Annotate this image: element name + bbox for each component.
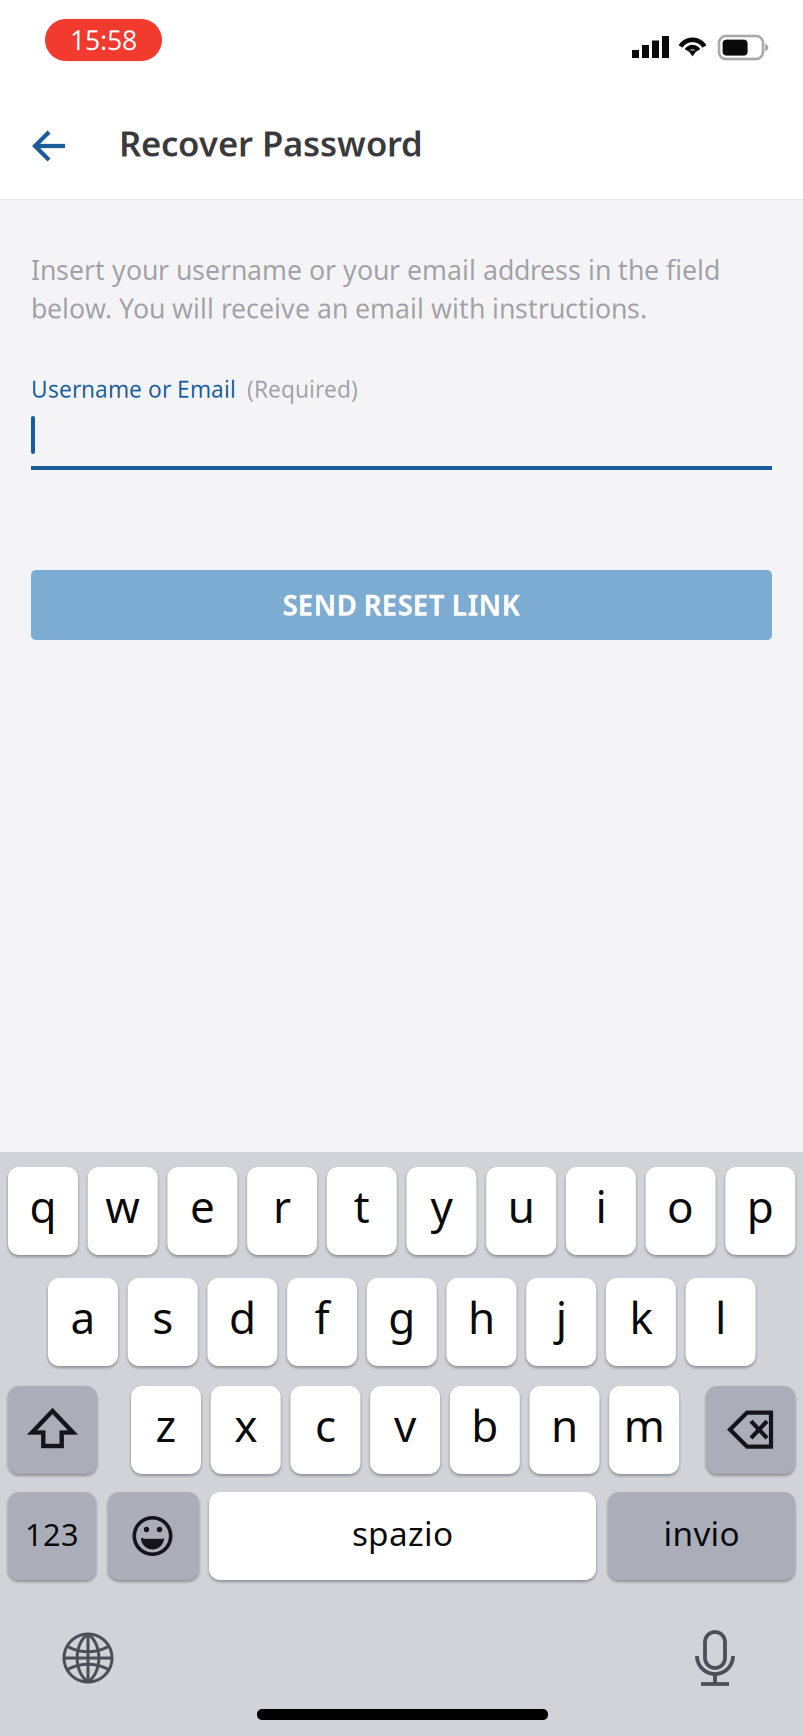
staticText: m [624, 1396, 665, 1454]
staticText: h [468, 1288, 495, 1346]
staticText: t [354, 1177, 370, 1235]
button[interactable]: l [686, 1278, 756, 1366]
button[interactable]: i [566, 1167, 636, 1255]
button[interactable]: a [48, 1278, 118, 1366]
staticText: x [234, 1396, 257, 1454]
staticText: g [388, 1288, 415, 1346]
button[interactable]: Shift [8, 1386, 97, 1474]
staticText: 123 [25, 1514, 79, 1554]
button[interactable]: b [450, 1386, 520, 1474]
staticText: y [430, 1177, 452, 1235]
button[interactable]: Delete [706, 1386, 795, 1474]
staticText: e [190, 1177, 215, 1235]
staticText: invio [663, 1511, 739, 1555]
staticText: spazio [352, 1511, 453, 1555]
button[interactable]: z [131, 1386, 201, 1474]
staticText: 15:58 [70, 22, 137, 58]
button[interactable]: 123 [8, 1492, 96, 1580]
button[interactable]: y [406, 1167, 476, 1255]
staticText: u [508, 1177, 535, 1235]
button[interactable]: Username or Email [31, 410, 772, 472]
staticText: l [715, 1288, 726, 1346]
button[interactable]: v [370, 1386, 440, 1474]
button[interactable]: g [367, 1278, 437, 1366]
button[interactable]: f [287, 1278, 357, 1366]
button[interactable]: t [327, 1167, 397, 1255]
staticText: Recover Password [119, 120, 423, 166]
button[interactable]: s [128, 1278, 198, 1366]
button[interactable]: Back [10, 100, 90, 192]
button[interactable]: spazio [209, 1492, 596, 1580]
staticText: a [70, 1288, 95, 1346]
staticText: f [315, 1288, 330, 1346]
staticText: i [595, 1177, 606, 1235]
staticText: v [394, 1396, 416, 1454]
staticText: j [556, 1288, 567, 1346]
staticText: b [471, 1396, 498, 1454]
button[interactable]: q [8, 1167, 78, 1255]
staticText: q [29, 1177, 56, 1235]
staticText: p [747, 1177, 774, 1235]
staticText: d [229, 1288, 256, 1346]
staticText: Insert your username or your email addre… [31, 252, 720, 326]
button[interactable]: n [529, 1386, 599, 1474]
button[interactable]: p [725, 1167, 795, 1255]
staticText: (Required) [247, 374, 358, 404]
button[interactable]: e [167, 1167, 237, 1255]
button[interactable]: x [211, 1386, 281, 1474]
staticText: w [105, 1177, 140, 1235]
button[interactable]: d [207, 1278, 277, 1366]
staticText: s [152, 1288, 173, 1346]
staticText: k [629, 1288, 652, 1346]
staticText: n [551, 1396, 578, 1454]
button[interactable]: c [290, 1386, 360, 1474]
staticText: c [315, 1396, 336, 1454]
button[interactable]: m [609, 1386, 679, 1474]
button[interactable]: j [526, 1278, 596, 1366]
button[interactable]: Change keyboard [63, 1633, 113, 1683]
staticText: SEND RESET LINK [282, 586, 520, 624]
button[interactable]: h [446, 1278, 516, 1366]
staticText: r [273, 1177, 291, 1235]
button[interactable]: SEND RESET LINK [31, 570, 772, 640]
button[interactable]: Dictation [692, 1626, 738, 1688]
button[interactable]: o [646, 1167, 716, 1255]
staticText: z [155, 1396, 176, 1454]
button[interactable]: r [247, 1167, 317, 1255]
button[interactable]: Emoji [108, 1492, 199, 1580]
button[interactable]: w [88, 1167, 158, 1255]
staticText: o [667, 1177, 694, 1235]
button[interactable]: invio [608, 1492, 795, 1580]
button[interactable]: u [486, 1167, 556, 1255]
button[interactable]: k [606, 1278, 676, 1366]
staticText: Username or Email [31, 374, 236, 404]
